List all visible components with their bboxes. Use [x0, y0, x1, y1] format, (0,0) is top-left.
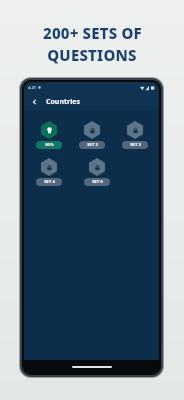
staticText: 4:21 — [28, 85, 36, 90]
staticText: SET 3 — [130, 142, 141, 148]
staticText: 200+ SETS OF — [43, 23, 142, 43]
button[interactable]: Back — [29, 96, 40, 107]
button[interactable]: SET 2 — [74, 121, 109, 149]
button[interactable]: SET 3 — [117, 121, 152, 149]
staticText: SET 4 — [44, 179, 55, 185]
button[interactable]: SET 4 — [31, 158, 66, 186]
button[interactable]: 50% — [31, 121, 66, 149]
button[interactable]: SET 5 — [79, 158, 114, 186]
staticText: SET 5 — [92, 179, 103, 185]
staticText: QUESTIONS — [47, 45, 137, 65]
staticText: 50% — [45, 142, 54, 148]
staticText: Countries — [46, 97, 80, 107]
staticText: SET 2 — [87, 142, 98, 148]
